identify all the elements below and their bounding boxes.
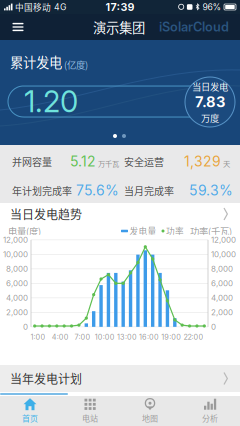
staticText: 2,000: [211, 308, 233, 317]
staticText: 1:00: [31, 333, 46, 341]
staticText: 8,000: [6, 264, 28, 274]
staticText: 96%: [202, 2, 221, 12]
staticText: 2,000: [6, 308, 28, 317]
staticText: 电量(度): [8, 224, 41, 238]
staticText: 16:00: [139, 333, 159, 341]
staticText: 中国移动: [15, 1, 51, 13]
button[interactable]: 电站: [60, 397, 120, 425]
staticText: (亿度): [64, 58, 88, 71]
staticText: 4G: [54, 2, 66, 12]
staticText: 首页: [22, 412, 38, 424]
staticText: 万度: [201, 111, 219, 124]
button[interactable]: 当日发电趋势: [0, 203, 240, 225]
staticText: 10,000: [211, 250, 236, 259]
staticText: 7:00: [74, 333, 90, 341]
staticText: 发电量: [129, 225, 156, 237]
staticText: 当年发电计划: [10, 370, 82, 387]
staticText: 当日发电趋势: [10, 205, 82, 223]
staticText: iSolarCloud: [159, 19, 229, 35]
staticText: 59.3%: [189, 182, 233, 199]
staticText: 10:00: [95, 333, 115, 341]
staticText: 分析: [202, 412, 218, 424]
staticText: 5.12: [70, 153, 96, 170]
staticText: 电站: [82, 412, 98, 424]
staticText: 0: [211, 322, 216, 332]
staticText: 0: [23, 322, 28, 332]
staticText: 万千瓦: [98, 158, 119, 169]
staticText: 地图: [142, 412, 158, 424]
staticText: 功率: [166, 225, 184, 237]
staticText: 10,000: [3, 250, 28, 259]
staticText: 天: [223, 158, 230, 169]
staticText: 功率(千瓦): [190, 224, 232, 238]
staticText: 6,000: [211, 279, 233, 288]
staticText: 13:00: [117, 333, 137, 341]
staticText: 75.6%: [76, 182, 119, 199]
staticText: 6,000: [6, 279, 28, 288]
staticText: 19:00: [161, 333, 181, 341]
button[interactable]: 地图: [120, 397, 180, 425]
button[interactable]: 分析: [180, 397, 240, 425]
staticText: 1,329: [184, 153, 221, 170]
staticText: 12,000: [211, 235, 236, 245]
staticText: 8,000: [211, 264, 233, 274]
staticText: 17:39: [105, 0, 134, 13]
button[interactable]: 当年发电计划: [0, 365, 240, 392]
staticText: 7.83: [195, 93, 225, 111]
staticText: 1.20: [24, 84, 78, 119]
staticText: 当月完成率: [124, 183, 174, 198]
staticText: 演示集团: [93, 17, 145, 37]
staticText: 4,000: [211, 293, 233, 303]
staticText: 4,000: [6, 293, 28, 303]
staticText: 12,000: [3, 235, 28, 245]
staticText: 22:00: [183, 333, 203, 341]
staticText: 累计发电: [10, 52, 62, 71]
staticText: 年计划完成率: [12, 183, 72, 198]
staticText: 安全运营: [124, 154, 164, 169]
button[interactable]: 菜单: [6, 14, 30, 40]
staticText: 当日发电: [192, 80, 228, 93]
button[interactable]: 首页: [0, 397, 60, 425]
staticText: 并网容量: [12, 154, 52, 169]
staticText: 4:00: [52, 333, 69, 341]
